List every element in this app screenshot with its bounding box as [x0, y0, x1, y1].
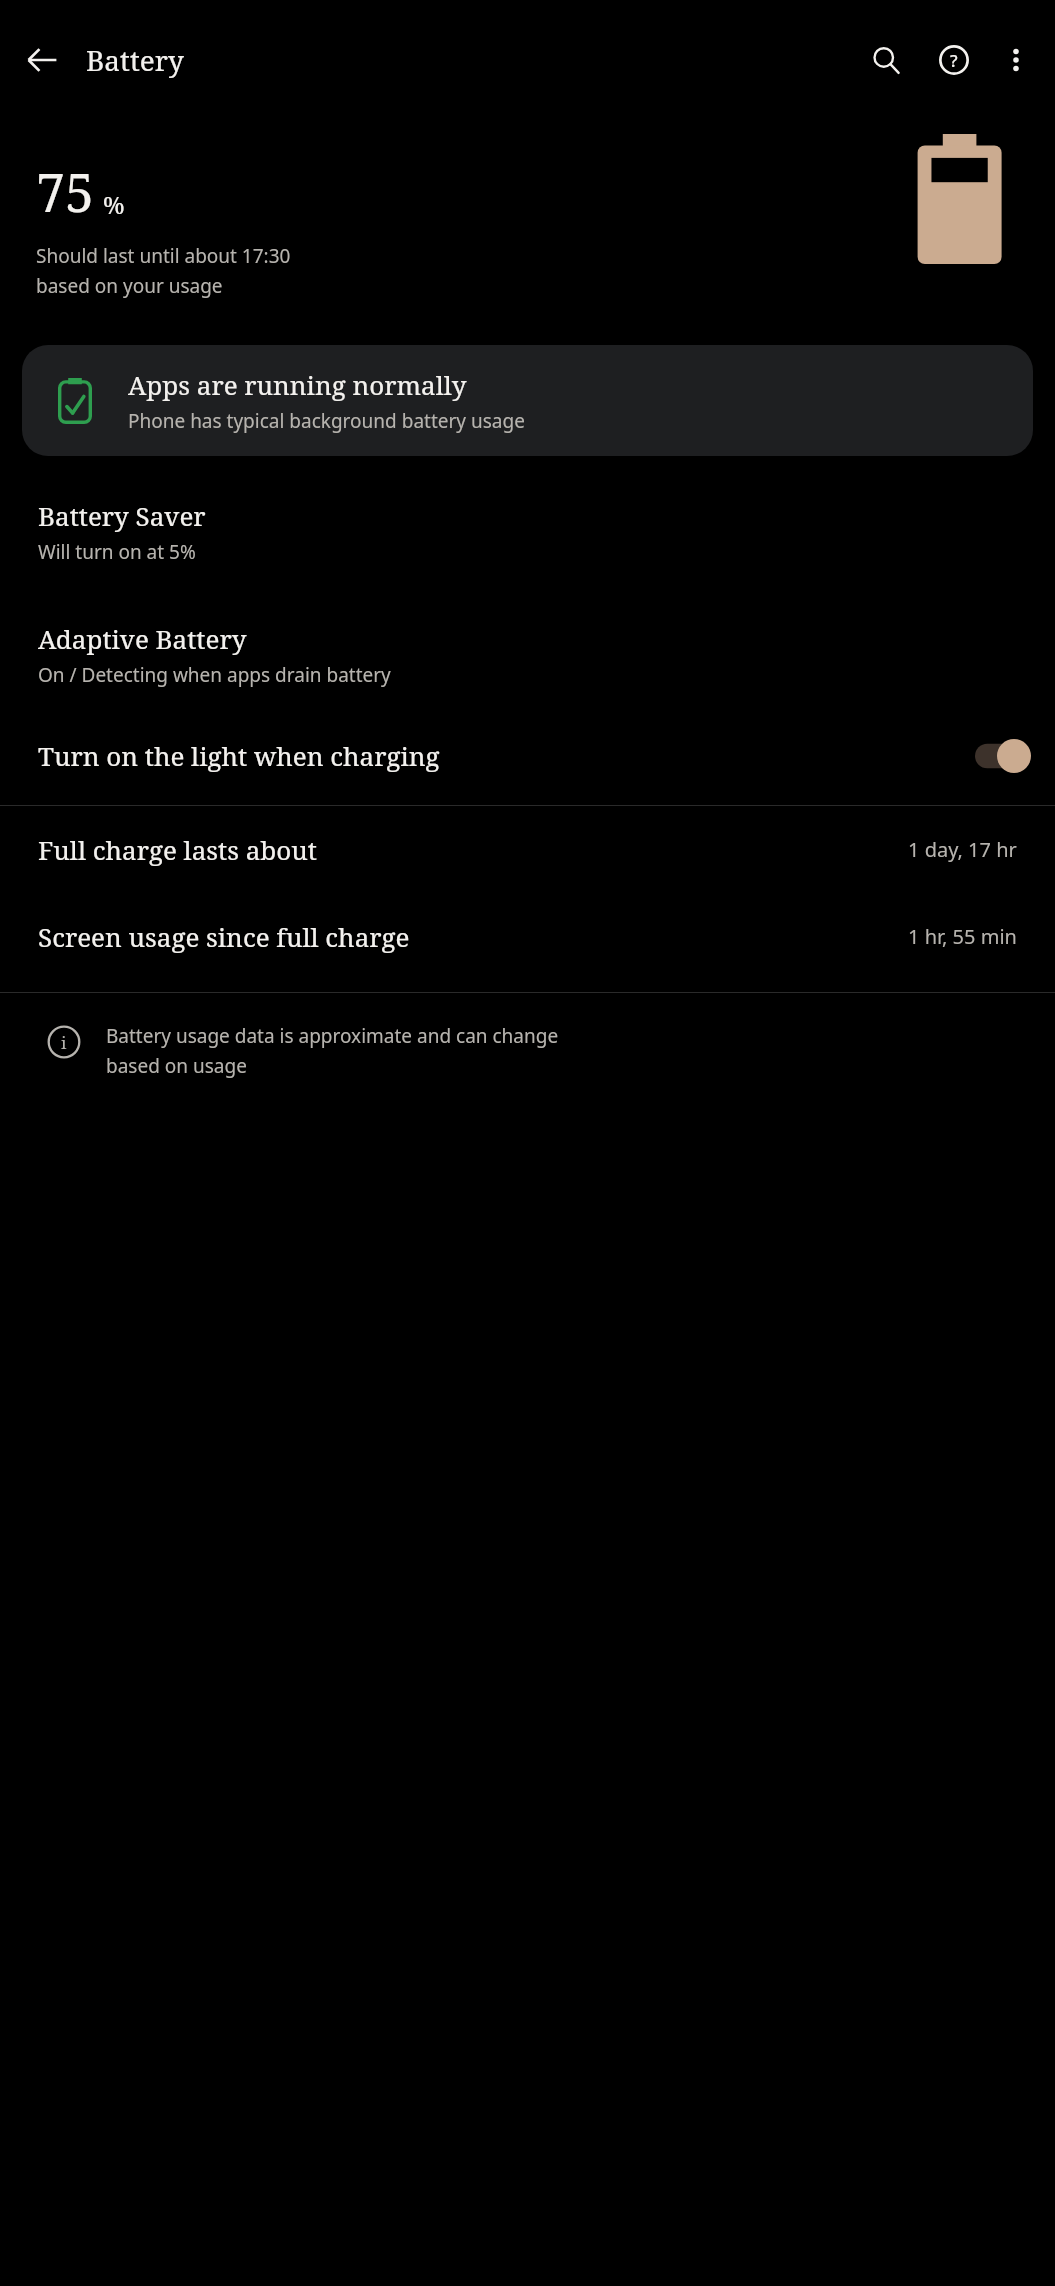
button[interactable]: Turn on the light when charging — [0, 724, 1055, 787]
staticText: i — [61, 1031, 67, 1054]
button[interactable]: Battery Saver — [0, 484, 1055, 579]
button[interactable]: Apps are running normally — [22, 345, 1033, 456]
staticText: based on your usage — [36, 273, 223, 299]
staticText: % — [103, 188, 125, 221]
button[interactable]: Adaptive Battery — [0, 607, 1055, 702]
staticText: Adaptive Battery — [38, 621, 247, 656]
staticText: Phone has typical background battery usa… — [128, 408, 525, 434]
button[interactable]: Back — [12, 30, 72, 90]
staticText: ? — [950, 49, 958, 72]
button[interactable]: Screen usage since full charge — [0, 893, 1055, 980]
staticText: 75 — [36, 156, 95, 227]
staticText: On / Detecting when apps drain battery — [38, 662, 391, 688]
staticText: Turn on the light when charging — [38, 738, 440, 773]
staticText: Battery usage data is approximate and ca… — [106, 1023, 559, 1049]
staticText: 1 hr, 55 min — [908, 923, 1017, 950]
staticText: 1 day, 17 hr — [908, 836, 1017, 863]
button[interactable]: More options — [987, 31, 1045, 89]
staticText: Apps are running normally — [128, 367, 467, 402]
staticText: Full charge lasts about — [38, 832, 317, 867]
staticText: Should last until about 17:30 — [36, 243, 291, 269]
staticText: Battery — [86, 41, 184, 79]
other: Battery level 75 percent — [899, 134, 1019, 264]
staticText: based on usage — [106, 1053, 247, 1079]
staticText: Screen usage since full charge — [38, 919, 410, 954]
button[interactable]: Search — [857, 31, 915, 89]
staticText: Will turn on at 5% — [38, 539, 196, 565]
staticText: Battery Saver — [38, 498, 206, 533]
button[interactable]: Help — [925, 31, 983, 89]
button[interactable]: Full charge lasts about — [0, 806, 1055, 893]
